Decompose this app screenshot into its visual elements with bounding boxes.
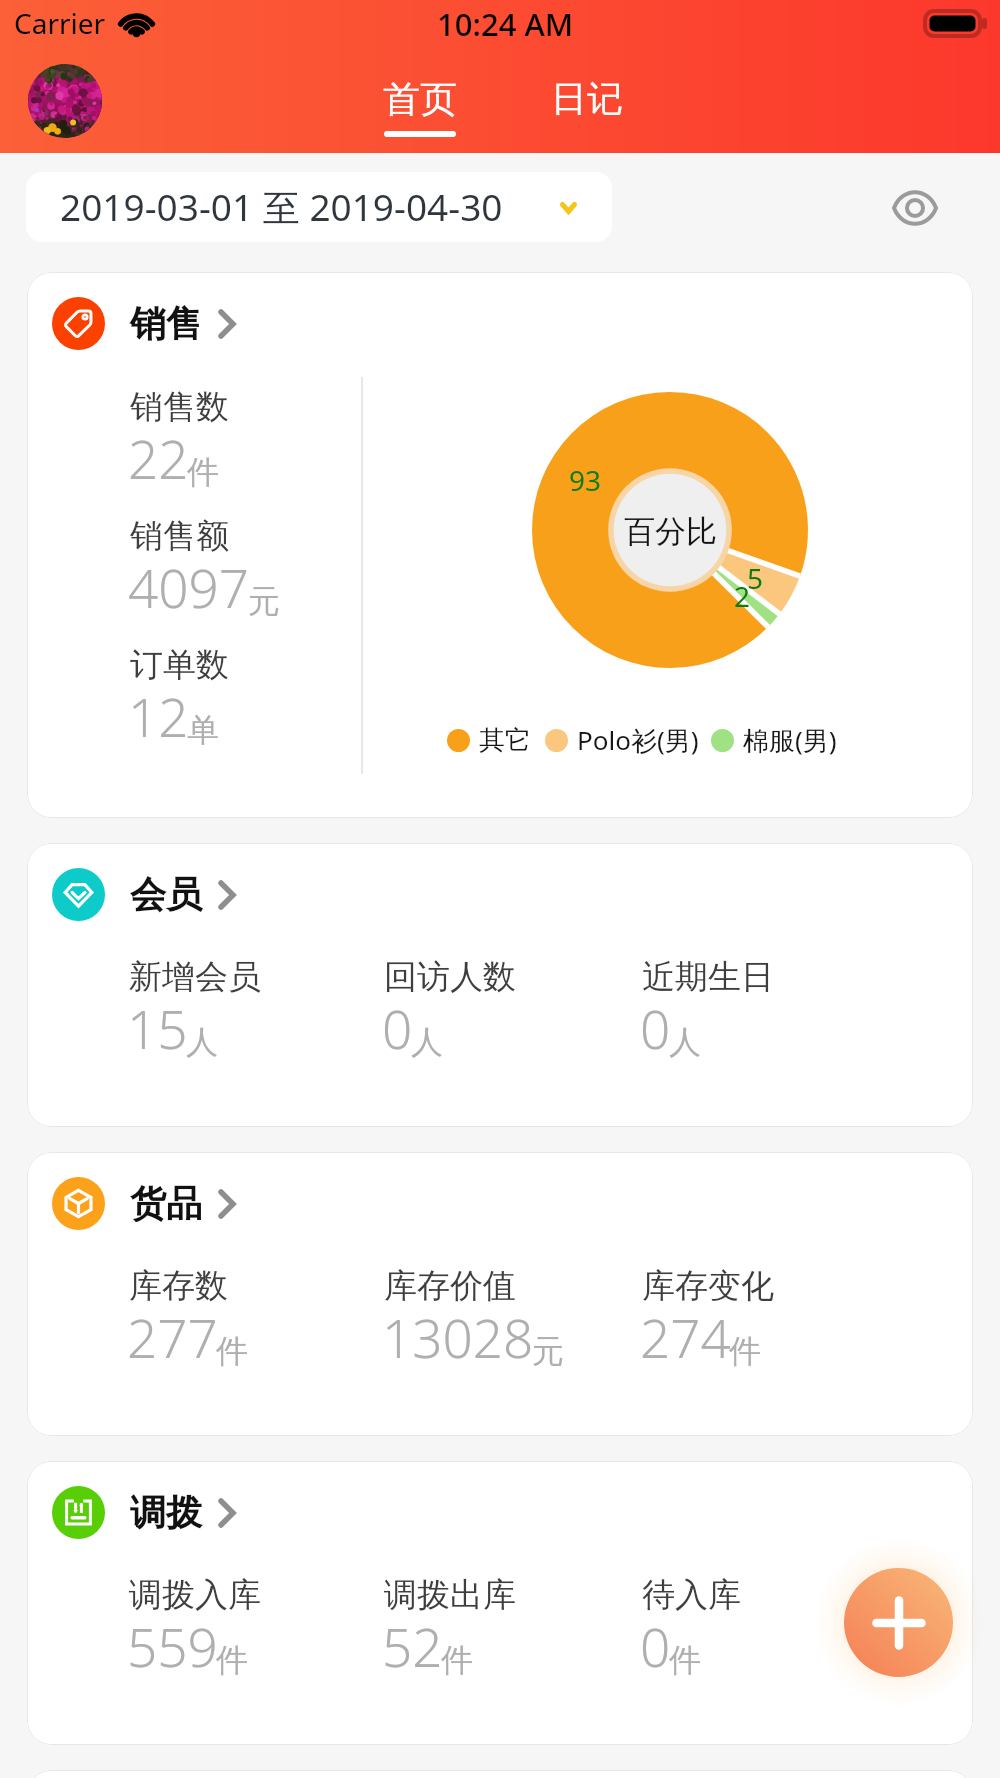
staticText: 件 xyxy=(441,1640,473,1680)
staticText: 件 xyxy=(216,1331,248,1371)
staticText: 日记 xyxy=(551,76,623,121)
staticText: 回访人数 xyxy=(384,956,516,998)
staticText: 库存变化 xyxy=(642,1265,774,1307)
staticText: 百分比 xyxy=(624,512,717,551)
staticText: 277 xyxy=(127,1301,218,1373)
button[interactable]: 首页 xyxy=(383,76,457,137)
staticText: 2 xyxy=(734,577,751,615)
staticText: 件 xyxy=(729,1331,761,1371)
staticText: 2019-03-01 至 2019-04-30 xyxy=(60,181,503,232)
staticText: 559 xyxy=(127,1610,218,1682)
staticText: 调拨出库 xyxy=(384,1574,516,1616)
staticText: 15 xyxy=(127,992,188,1064)
staticText: 新增会员 xyxy=(129,956,261,998)
staticText: 10:24 AM xyxy=(437,3,574,45)
button[interactable]: Toggle visibility xyxy=(881,174,949,242)
staticText: 调拨 xyxy=(130,1490,202,1535)
staticText: 0 xyxy=(640,1610,671,1682)
staticText: 人 xyxy=(411,1022,443,1062)
staticText: Polo衫(男) xyxy=(577,722,699,758)
staticText: 件 xyxy=(187,452,219,492)
staticText: 销售额 xyxy=(130,515,229,557)
staticText: 人 xyxy=(186,1022,218,1062)
staticText: 元 xyxy=(532,1331,564,1371)
staticText: 销售数 xyxy=(130,386,229,428)
staticText: 近期生日 xyxy=(642,956,774,998)
staticText: 件 xyxy=(216,1640,248,1680)
staticText: 22 xyxy=(128,422,189,494)
staticText: 0 xyxy=(640,992,671,1064)
staticText: 待入库 xyxy=(642,1574,741,1616)
button[interactable]: 2019-03-01 至 2019-04-30 xyxy=(26,172,612,242)
staticText: 首页 xyxy=(383,76,457,123)
staticText: 5 xyxy=(747,559,764,597)
staticText: 52 xyxy=(382,1610,443,1682)
staticText: 单 xyxy=(187,710,219,750)
staticText: 件 xyxy=(669,1640,701,1680)
button[interactable]: Profile xyxy=(28,64,102,138)
button[interactable]: Add xyxy=(844,1568,953,1677)
button[interactable]: 销售 xyxy=(52,297,236,350)
staticText: 会员 xyxy=(130,872,202,917)
staticText: 库存数 xyxy=(129,1265,228,1307)
staticText: 人 xyxy=(669,1022,701,1062)
button[interactable]: 会员 xyxy=(52,868,236,921)
staticText: 库存价值 xyxy=(384,1265,516,1307)
staticText: 93 xyxy=(569,461,602,499)
button[interactable]: 调拨 xyxy=(52,1486,236,1539)
staticText: 其它 xyxy=(479,724,531,757)
staticText: 274 xyxy=(640,1301,731,1373)
staticText: 12 xyxy=(128,680,189,752)
staticText: 销售 xyxy=(130,301,202,346)
staticText: 货品 xyxy=(130,1181,202,1226)
staticText: 4097 xyxy=(128,551,250,623)
staticText: 订单数 xyxy=(130,644,229,686)
button[interactable]: 货品 xyxy=(52,1177,236,1230)
staticText: 棉服(男) xyxy=(743,722,837,758)
staticText: 调拨入库 xyxy=(129,1574,261,1616)
staticText: 元 xyxy=(248,581,280,621)
staticText: 13028 xyxy=(382,1301,534,1373)
button[interactable]: 日记 xyxy=(551,76,623,121)
staticText: Carrier xyxy=(14,4,106,42)
staticText: 0 xyxy=(382,992,413,1064)
